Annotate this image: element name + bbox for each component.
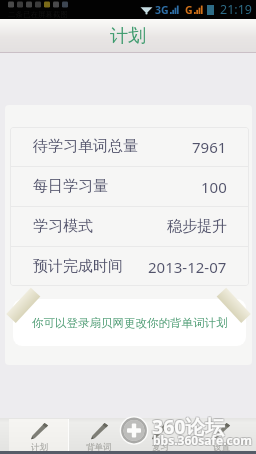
staticText: bbs.360safe.com — [153, 432, 252, 448]
staticText: bbs.360safe.com — [154, 433, 253, 449]
button[interactable]: 待学习单词总量 — [10, 127, 249, 166]
button[interactable]: 计划 — [9, 419, 69, 454]
staticText: 360论坛 — [153, 414, 226, 441]
staticText: 2013-12-07 — [148, 257, 227, 277]
staticText: 7961 — [192, 137, 227, 157]
staticText: 360论坛 — [151, 413, 224, 440]
staticText: 360论坛 — [152, 414, 225, 441]
staticText: 360论坛 — [153, 412, 226, 439]
button[interactable]: 学习模式 — [10, 207, 249, 246]
staticText: bbs.360safe.com — [153, 431, 252, 447]
staticText: bbs.360safe.com — [154, 431, 253, 447]
staticText: 360论坛 — [151, 412, 224, 439]
staticText: G — [185, 3, 193, 17]
staticText: 3G — [155, 3, 169, 17]
staticText: 你可以登录扇贝网更改你的背单词计划 — [32, 316, 228, 330]
button[interactable]: 复习 — [129, 419, 190, 454]
staticText: 设置 — [213, 442, 230, 453]
staticText: bbs.360safe.com — [152, 431, 251, 447]
staticText: 二条已在屏幕截图 — [8, 10, 68, 19]
staticText: 21:19 — [220, 1, 252, 18]
staticText: 计划 — [110, 25, 146, 48]
staticText: bbs.360safe.com — [153, 433, 252, 449]
staticText: 待学习单词总量 — [33, 137, 138, 156]
button[interactable]: 设置 — [190, 419, 251, 454]
button[interactable]: 每日学习量 — [10, 167, 249, 206]
button[interactable]: 你可以登录扇贝网更改你的背单词计划 — [13, 299, 246, 346]
staticText: 360论坛 — [152, 413, 225, 440]
button[interactable]: 背单词 — [69, 419, 129, 454]
staticText: 复习 — [152, 442, 169, 453]
staticText: 360论坛 — [151, 414, 224, 441]
staticText: bbs.360safe.com — [154, 432, 253, 448]
staticText: bbs.360safe.com — [152, 433, 251, 449]
staticText: 100 — [201, 177, 227, 197]
staticText: 预计完成时间 — [33, 257, 123, 276]
staticText: bbs.360safe.com — [152, 432, 251, 448]
staticText: 每日学习量 — [33, 177, 108, 196]
staticText: 学习模式 — [33, 217, 93, 236]
staticText: 360论坛 — [153, 413, 226, 440]
button[interactable]: 预计完成时间 — [10, 247, 249, 286]
staticText: 稳步提升 — [167, 217, 227, 236]
staticText: 背单词 — [86, 442, 112, 453]
staticText: 360论坛 — [152, 412, 225, 439]
staticText: 计划 — [31, 442, 48, 453]
